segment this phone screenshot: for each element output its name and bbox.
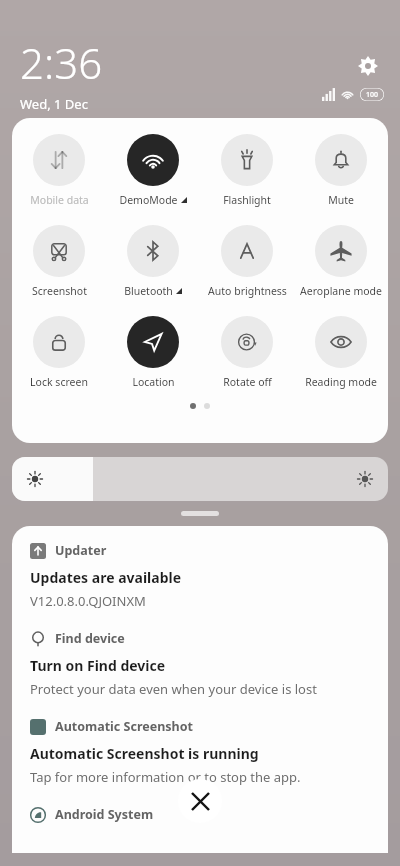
button[interactable]: Auto brightness (200, 223, 294, 300)
button[interactable]: Brightness (12, 457, 388, 501)
staticText: Reading mode (305, 375, 377, 389)
staticText: Updater (55, 542, 107, 559)
staticText: Updates are available (30, 568, 182, 587)
button[interactable]: Find device (30, 630, 370, 698)
button[interactable]: Flashlight (200, 132, 294, 209)
button[interactable]: Settings (352, 50, 384, 82)
button[interactable]: DemoMode (106, 132, 200, 209)
staticText: Bluetooth (124, 284, 173, 298)
button[interactable]: Updater (30, 542, 370, 610)
button[interactable]: Close (178, 779, 222, 823)
staticText: Location (132, 375, 175, 389)
staticText: Protect your data even when your device … (30, 680, 317, 698)
staticText: Automatic Screenshot (55, 718, 193, 735)
staticText: Mute (328, 193, 354, 207)
button[interactable]: Bluetooth (106, 223, 200, 300)
staticText: Turn on Find device (30, 656, 166, 675)
button[interactable]: Rotate off (200, 314, 294, 391)
button[interactable]: Aeroplane mode (294, 223, 388, 300)
staticText: Wed, 1 Dec (20, 95, 88, 113)
button[interactable]: Mute (294, 132, 388, 209)
staticText: Tap for more information or to stop the … (30, 768, 301, 786)
staticText: Find device (55, 630, 125, 647)
button[interactable]: Lock screen (12, 314, 106, 391)
button[interactable]: Location (106, 314, 200, 391)
staticText: Android System (55, 806, 154, 823)
staticText: 2:36 (20, 34, 103, 91)
button[interactable]: Reading mode (294, 314, 388, 391)
staticText: Lock screen (30, 375, 88, 389)
button[interactable]: Screenshot (12, 223, 106, 300)
button[interactable]: Mobile data (12, 132, 106, 209)
staticText: Screenshot (32, 284, 87, 298)
button[interactable]: Automatic Screenshot (30, 718, 370, 786)
staticText: Automatic Screenshot is running (30, 744, 259, 763)
staticText: Mobile data (30, 193, 89, 207)
staticText: 100 (366, 90, 379, 100)
staticText: Aeroplane mode (300, 284, 382, 298)
staticText: V12.0.8.0.QJOINXM (30, 592, 146, 610)
staticText: Auto brightness (208, 284, 287, 298)
staticText: Flashlight (223, 193, 271, 207)
staticText: DemoMode (119, 193, 178, 207)
staticText: Rotate off (223, 375, 272, 389)
